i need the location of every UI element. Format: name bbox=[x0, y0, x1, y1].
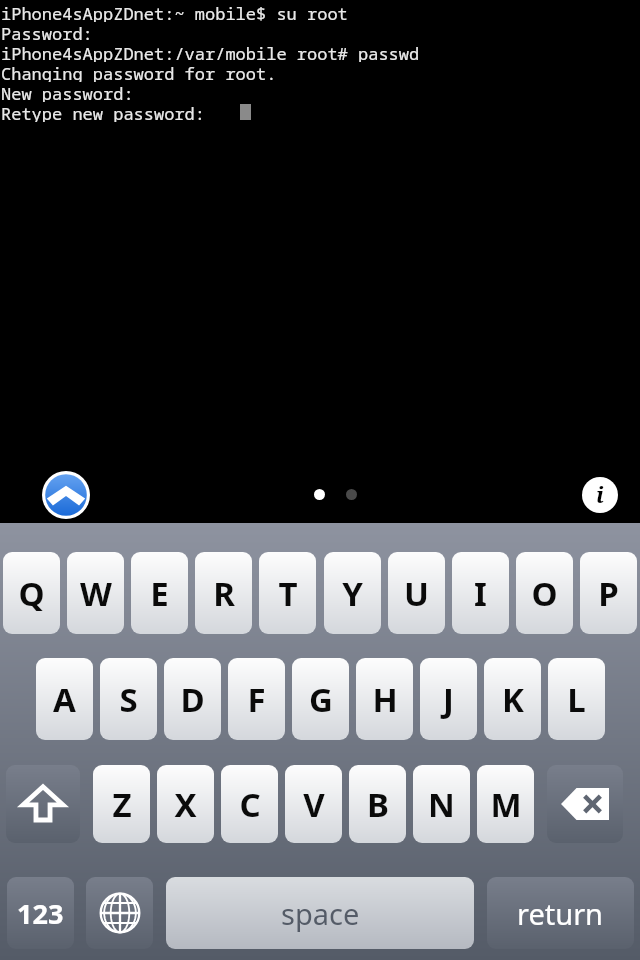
staticText: U bbox=[404, 571, 429, 616]
button[interactable]: N bbox=[413, 765, 470, 843]
staticText: R bbox=[213, 571, 235, 616]
staticText: Q bbox=[18, 571, 45, 616]
button[interactable]: Shift bbox=[6, 765, 80, 843]
staticText: S bbox=[119, 677, 138, 722]
button[interactable]: I bbox=[452, 552, 509, 634]
staticText: Z bbox=[112, 782, 132, 827]
button[interactable]: V bbox=[285, 765, 342, 843]
staticText: N bbox=[428, 782, 455, 827]
staticText: L bbox=[567, 677, 586, 722]
staticText: F bbox=[247, 677, 266, 722]
button[interactable]: D bbox=[164, 658, 221, 740]
staticText: iPhone4sAppZDnet:~ mobile$ su root bbox=[1, 2, 348, 22]
button[interactable]: T bbox=[259, 552, 316, 634]
button[interactable]: Numbers bbox=[7, 877, 74, 949]
staticText: W bbox=[80, 571, 112, 616]
button[interactable]: A bbox=[36, 658, 93, 740]
staticText: O bbox=[531, 571, 558, 616]
staticText: Password: bbox=[1, 22, 93, 42]
staticText: return bbox=[517, 894, 604, 933]
button[interactable]: Change keyboard bbox=[86, 877, 153, 949]
staticText: I bbox=[474, 571, 487, 616]
button[interactable]: J bbox=[420, 658, 477, 740]
staticText: space bbox=[281, 894, 360, 933]
staticText: Y bbox=[342, 571, 363, 616]
button[interactable]: H bbox=[356, 658, 413, 740]
button[interactable]: E bbox=[131, 552, 188, 634]
button[interactable]: C bbox=[221, 765, 278, 843]
button[interactable]: X bbox=[157, 765, 214, 843]
button[interactable]: Q bbox=[3, 552, 60, 634]
staticText: G bbox=[309, 677, 333, 722]
button[interactable]: B bbox=[349, 765, 406, 843]
button[interactable]: K bbox=[484, 658, 541, 740]
button[interactable]: Z bbox=[93, 765, 150, 843]
button[interactable]: P bbox=[580, 552, 637, 634]
button[interactable]: Scroll up bbox=[42, 471, 90, 519]
staticText: 123 bbox=[17, 895, 64, 932]
staticText: M bbox=[490, 782, 522, 827]
button[interactable]: Info bbox=[582, 477, 618, 513]
button[interactable]: return bbox=[487, 877, 634, 949]
button[interactable]: R bbox=[195, 552, 252, 634]
staticText: X bbox=[174, 782, 197, 827]
button[interactable]: S bbox=[100, 658, 157, 740]
button[interactable]: Y bbox=[324, 552, 381, 634]
staticText: P bbox=[598, 571, 619, 616]
staticText: H bbox=[372, 677, 398, 722]
staticText: V bbox=[303, 782, 325, 827]
button[interactable]: L bbox=[548, 658, 605, 740]
staticText: B bbox=[367, 782, 389, 827]
staticText: A bbox=[53, 677, 76, 722]
button[interactable]: O bbox=[516, 552, 573, 634]
staticText: New password: bbox=[1, 82, 134, 102]
staticText: Changing password for root. bbox=[1, 62, 277, 82]
button[interactable]: G bbox=[292, 658, 349, 740]
button[interactable]: space bbox=[166, 877, 474, 949]
staticText: iPhone4sAppZDnet:/var/mobile root# passw… bbox=[1, 42, 420, 62]
staticText: D bbox=[180, 677, 205, 722]
button[interactable]: F bbox=[228, 658, 285, 740]
button[interactable]: U bbox=[388, 552, 445, 634]
staticText: J bbox=[443, 677, 454, 722]
button[interactable]: M bbox=[477, 765, 534, 843]
staticText: T bbox=[278, 571, 298, 616]
staticText: K bbox=[502, 677, 524, 722]
staticText: C bbox=[239, 782, 261, 827]
button[interactable]: Backspace bbox=[547, 765, 623, 843]
staticText: Retype new password: bbox=[1, 102, 205, 122]
staticText: i bbox=[596, 479, 604, 509]
staticText: E bbox=[150, 571, 169, 616]
button[interactable]: W bbox=[67, 552, 124, 634]
